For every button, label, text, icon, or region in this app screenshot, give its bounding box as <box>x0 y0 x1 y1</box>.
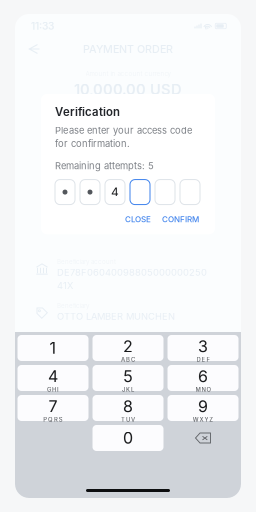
staticText: R <box>54 416 58 423</box>
staticText: A <box>121 356 125 363</box>
button[interactable]: 4 <box>17 365 88 391</box>
staticText: B <box>126 356 130 363</box>
button[interactable]: CLOSE <box>121 213 155 226</box>
staticText: H <box>52 386 56 393</box>
staticText: Z <box>209 416 213 423</box>
staticText: 10,000.00 USD <box>74 80 182 98</box>
button[interactable]: 3 <box>167 335 238 361</box>
staticText: 5 <box>123 367 133 386</box>
staticText: Y <box>204 416 208 423</box>
button[interactable]: 8 <box>92 395 163 421</box>
button[interactable]: Back <box>21 39 47 59</box>
staticText: CLOSE <box>125 215 151 224</box>
staticText: PAYMENT ORDER <box>83 42 173 55</box>
staticText: M <box>196 386 201 393</box>
staticText: V <box>131 416 135 423</box>
staticText: CONFIRM <box>162 215 199 224</box>
button[interactable]: 9 <box>167 395 238 421</box>
button[interactable]: 7 <box>17 395 88 421</box>
staticText: 11:33 <box>31 20 54 32</box>
staticText: K <box>126 386 130 393</box>
staticText: W <box>193 416 199 423</box>
staticText: 0 <box>123 428 133 448</box>
button[interactable]: CONFIRM <box>158 213 203 226</box>
staticText: E <box>201 356 205 363</box>
staticText: 3 <box>198 337 208 356</box>
button[interactable]: 2 <box>92 335 163 361</box>
staticText: L <box>131 386 134 393</box>
button[interactable]: 1 <box>17 335 88 361</box>
button[interactable]: 6 <box>167 365 238 391</box>
staticText: 4 <box>48 367 58 386</box>
staticText: Please enter your access code for confir… <box>55 125 192 149</box>
staticText: D <box>197 356 201 363</box>
staticText: J <box>122 386 125 393</box>
button[interactable]: 5 <box>92 365 163 391</box>
staticText: 4 <box>111 185 119 199</box>
staticText: U <box>126 416 130 423</box>
staticText: T <box>121 416 125 423</box>
staticText: Q <box>48 416 53 423</box>
staticText: 6 <box>198 367 208 386</box>
staticText: G <box>47 386 51 393</box>
staticText: S <box>59 416 63 423</box>
staticText: 9 <box>198 397 208 416</box>
staticText: N <box>201 386 205 393</box>
staticText: C <box>131 356 135 363</box>
button[interactable]: 0 <box>92 425 163 451</box>
staticText: P <box>43 416 47 423</box>
staticText: I <box>57 386 59 393</box>
staticText: F <box>206 356 209 363</box>
staticText: 8 <box>123 397 133 416</box>
staticText: 1 <box>49 338 56 358</box>
staticText: Remaining attempts: 5 <box>55 160 154 172</box>
staticText: Verification <box>55 105 120 119</box>
staticText: DE78F06040098805000000250 41X <box>57 267 207 291</box>
staticText: OTTO LAMBER MUNCHEN <box>57 311 175 322</box>
staticText: 7 <box>48 397 57 416</box>
staticText: 2 <box>123 337 133 356</box>
staticText: X <box>200 416 204 423</box>
button[interactable]: Delete <box>167 425 238 451</box>
staticText: O <box>206 386 210 393</box>
